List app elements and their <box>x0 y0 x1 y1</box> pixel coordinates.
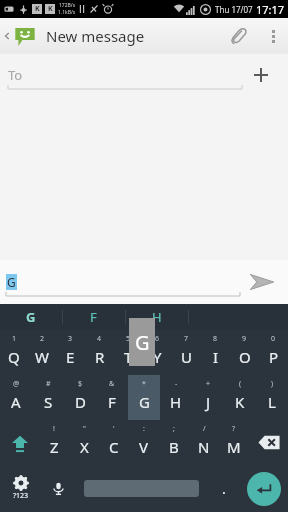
staticText: 0 <box>271 334 276 344</box>
staticText: O <box>239 347 251 367</box>
staticText: D <box>75 392 86 412</box>
button[interactable]: # <box>32 375 64 420</box>
staticText: K <box>235 392 245 412</box>
button[interactable]: 7 <box>172 330 201 375</box>
staticText: B <box>169 437 179 457</box>
button[interactable]: @ <box>0 375 32 420</box>
button[interactable]: Enter <box>240 465 288 512</box>
staticText: M <box>227 437 241 457</box>
button[interactable]: 2 <box>28 330 56 375</box>
button[interactable]: Settings and symbols <box>0 465 42 512</box>
staticText: W <box>35 347 49 367</box>
staticText: * <box>142 379 146 389</box>
button[interactable]: 9 <box>230 330 259 375</box>
staticText: $ <box>78 379 83 389</box>
button[interactable]: ) <box>256 375 288 420</box>
button[interactable]: " <box>69 420 99 465</box>
button[interactable]: 6 <box>143 330 172 375</box>
button[interactable]: ; <box>159 420 189 465</box>
staticText: : <box>143 424 145 434</box>
button[interactable]: Backspace <box>249 420 288 465</box>
button[interactable]: F <box>62 304 125 330</box>
staticText: New message <box>46 26 145 46</box>
staticText: H <box>170 392 182 412</box>
staticText: " <box>83 424 86 434</box>
button[interactable]: $ <box>64 375 96 420</box>
staticText: C <box>109 437 119 457</box>
staticText: K <box>35 4 40 14</box>
staticText: 4 <box>97 334 102 344</box>
button[interactable]: Navigate up <box>0 18 38 54</box>
staticText: ' <box>113 424 115 434</box>
staticText: 6 <box>155 334 160 344</box>
button[interactable]: 0 <box>259 330 288 375</box>
staticText: E <box>66 347 75 367</box>
staticText: + <box>206 379 211 389</box>
staticText: G <box>7 274 16 290</box>
button[interactable]: 5 <box>114 330 143 375</box>
staticText: ?123 <box>13 491 29 501</box>
button[interactable]: Voice input <box>42 465 74 512</box>
button[interactable]: ? <box>219 420 249 465</box>
staticText: L <box>268 392 276 412</box>
button[interactable]: 1 <box>0 330 28 375</box>
button[interactable]: 8 <box>201 330 230 375</box>
staticText: R <box>95 347 105 367</box>
button[interactable]: : <box>129 420 159 465</box>
staticText: Q <box>8 347 20 367</box>
button[interactable]: H <box>125 304 188 330</box>
button[interactable]: & <box>96 375 128 420</box>
staticText: ; <box>173 424 175 434</box>
staticText: @ <box>13 379 20 389</box>
staticText: A <box>11 392 21 412</box>
staticText: 5 <box>126 334 131 344</box>
staticText: V <box>139 437 149 457</box>
button[interactable]: 3 <box>56 330 85 375</box>
staticText: 2 <box>40 334 45 344</box>
staticText: 8 <box>213 334 218 344</box>
staticText: 1 <box>12 334 17 344</box>
button[interactable]: Add recipient <box>242 56 280 94</box>
staticText: S <box>44 392 53 412</box>
staticText: & <box>109 379 115 389</box>
staticText: . <box>222 479 226 498</box>
button[interactable]: To <box>8 60 242 90</box>
button[interactable]: . <box>208 465 240 512</box>
button[interactable]: / <box>189 420 219 465</box>
staticText: Y <box>153 347 162 367</box>
staticText: ! <box>53 424 55 434</box>
staticText: F <box>108 392 116 412</box>
staticText: - <box>175 379 178 389</box>
staticText: 7 <box>184 334 189 344</box>
button[interactable]: Attach <box>218 18 258 54</box>
staticText: P <box>269 347 279 367</box>
staticText: Thu 17/07 <box>215 4 253 15</box>
staticText: 3 <box>68 334 73 344</box>
staticText: G <box>135 329 150 356</box>
staticText: G <box>139 392 150 412</box>
button[interactable]: Space <box>74 465 208 512</box>
staticText: # <box>46 379 51 389</box>
staticText: To <box>8 66 23 84</box>
button[interactable]: ! <box>39 420 69 465</box>
staticText: T <box>124 347 133 367</box>
button[interactable]: More options <box>258 18 288 54</box>
button[interactable]: + <box>192 375 224 420</box>
staticText: K <box>48 4 53 14</box>
staticText: H <box>152 308 162 326</box>
staticText: 17:17 <box>256 2 285 17</box>
button[interactable]: Send <box>240 262 284 302</box>
button[interactable]: ( <box>224 375 256 420</box>
button[interactable]: G <box>0 304 62 330</box>
button[interactable]: * <box>128 375 160 420</box>
button[interactable]: 4 <box>85 330 114 375</box>
button[interactable]: ' <box>99 420 129 465</box>
button[interactable]: G <box>6 267 240 297</box>
button[interactable]: Shift <box>0 420 39 465</box>
staticText: N <box>198 437 210 457</box>
button[interactable]: - <box>160 375 192 420</box>
staticText: X <box>80 437 89 457</box>
staticText: G <box>26 308 36 326</box>
staticText: ) <box>271 379 274 389</box>
staticText: / <box>203 424 206 434</box>
